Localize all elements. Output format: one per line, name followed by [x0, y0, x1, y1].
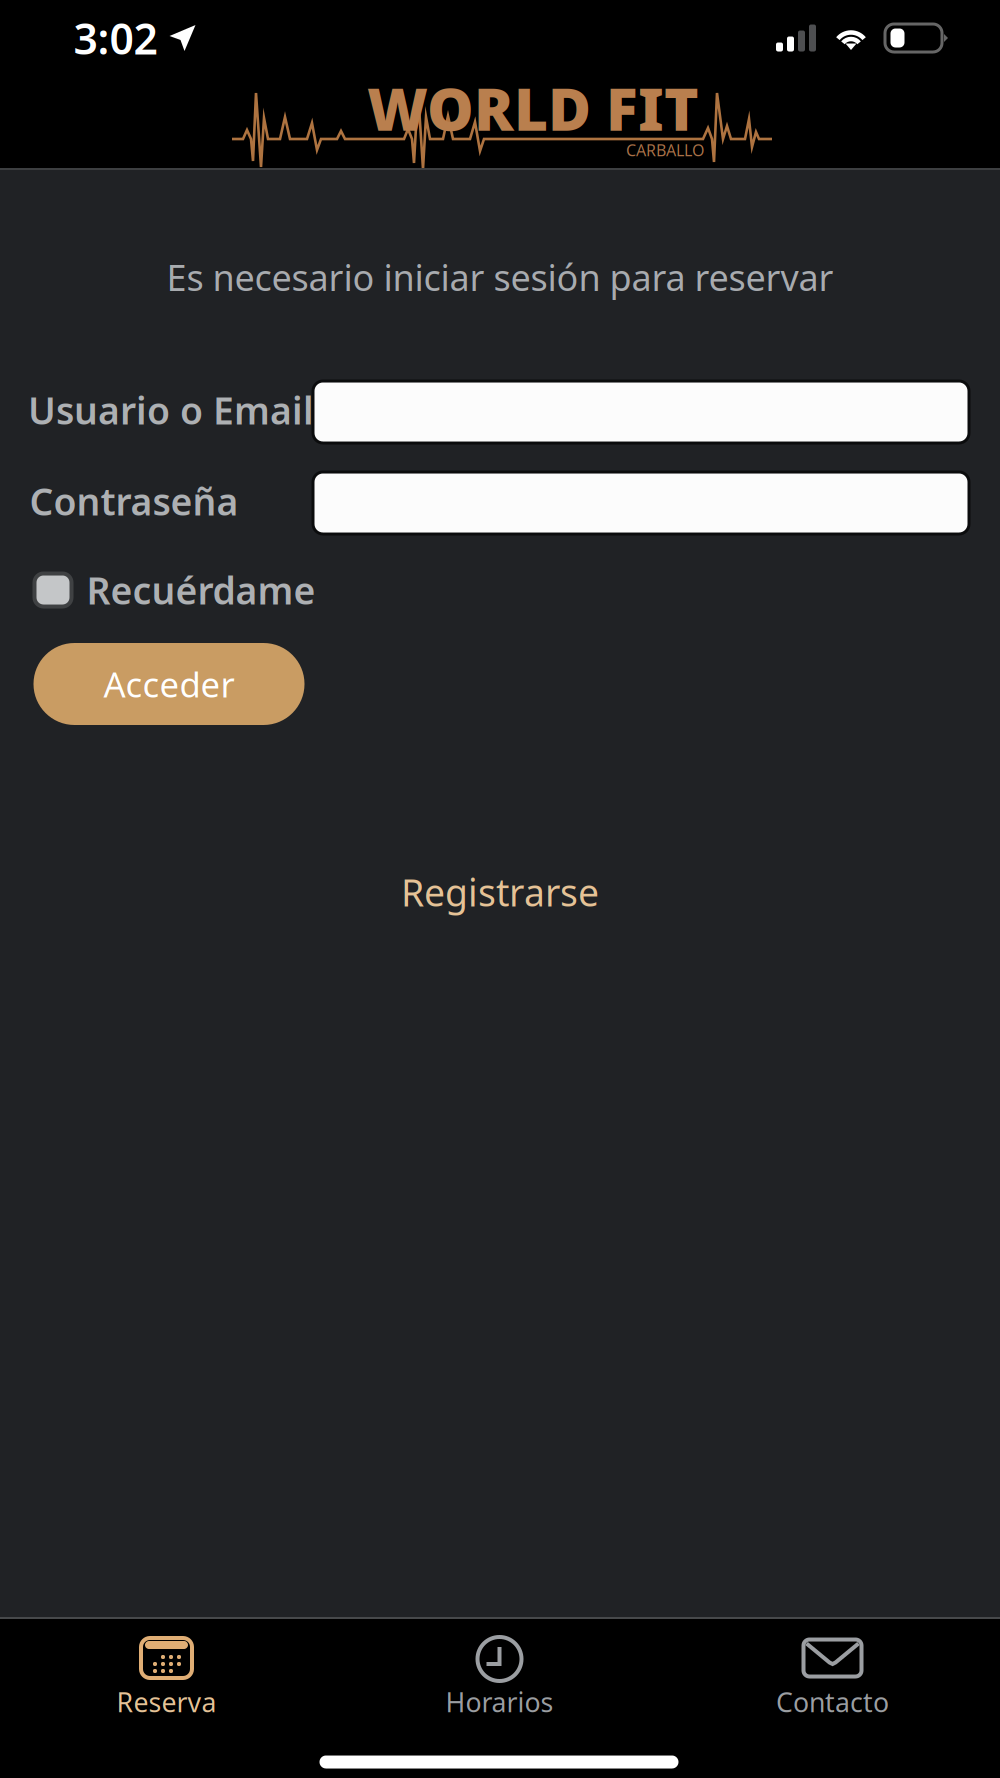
- button[interactable]: Contacto: [666, 1619, 999, 1719]
- button[interactable]: Registrarse: [401, 867, 599, 917]
- staticText: Usuario o Email: [28, 385, 314, 435]
- staticText: CARBALLO: [626, 139, 704, 161]
- staticText: Reserva: [116, 1684, 216, 1720]
- staticText: Acceder: [103, 661, 234, 707]
- button[interactable]: Acceder: [33, 643, 304, 725]
- staticText: Registrarse: [401, 867, 599, 917]
- button[interactable]: Recuérdame: [34, 565, 315, 615]
- button[interactable]: Reserva: [0, 1619, 333, 1719]
- staticText: Contacto: [776, 1684, 889, 1720]
- staticText: 3:02: [73, 10, 157, 66]
- staticText: Horarios: [445, 1684, 553, 1720]
- button[interactable]: Horarios: [333, 1619, 666, 1719]
- staticText: WORLD FIT: [367, 69, 699, 147]
- staticText: Es necesario iniciar sesión para reserva…: [166, 253, 833, 301]
- staticText: Contraseña: [29, 476, 238, 526]
- staticText: Recuérdame: [86, 565, 315, 615]
